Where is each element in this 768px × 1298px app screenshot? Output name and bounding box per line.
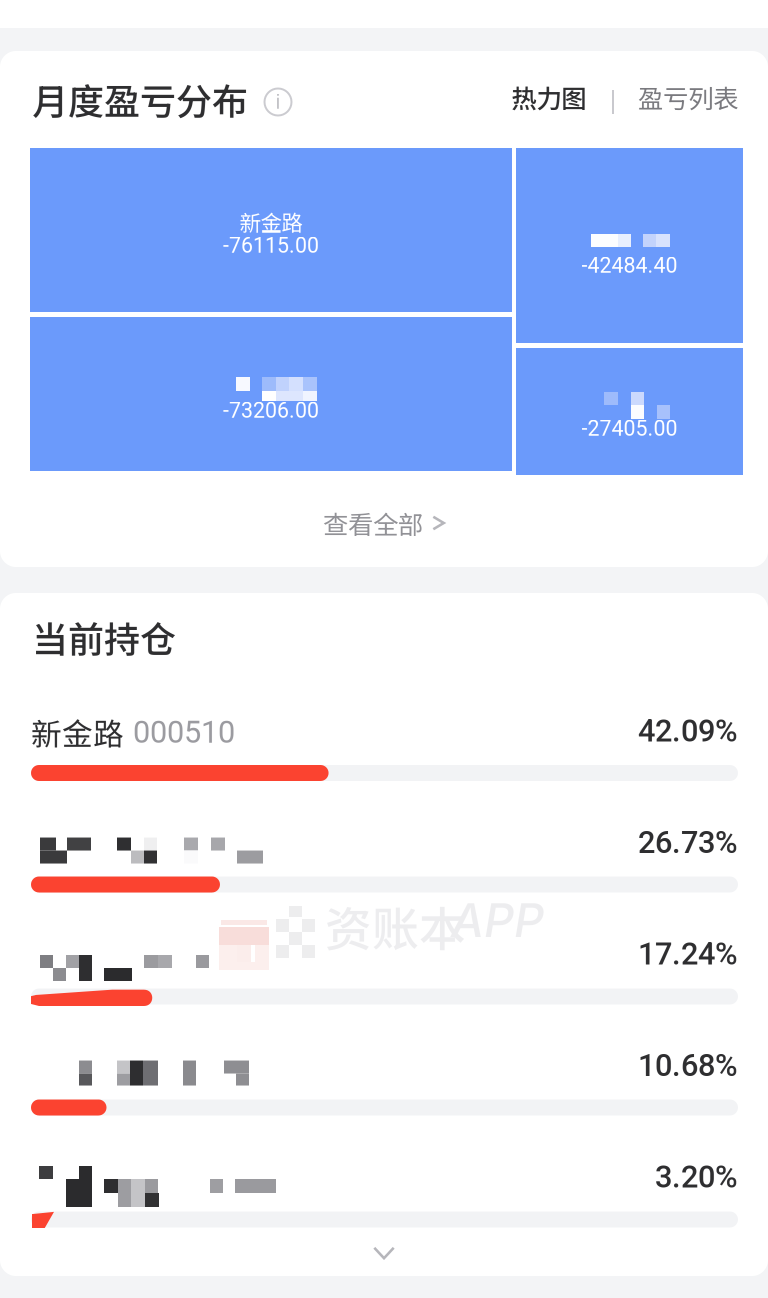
button[interactable]: 展开更多 (0, 1231, 768, 1275)
staticText: -76115.00 (223, 233, 319, 258)
staticText: 000510 (133, 714, 235, 750)
staticText: 新金路 (31, 710, 124, 754)
button[interactable]: 17.24% (0, 941, 768, 1041)
button[interactable]: 查看全部 (0, 495, 768, 551)
staticText: -27405.00 (581, 416, 677, 441)
staticText: i (275, 90, 280, 114)
button[interactable]: 10.68% (0, 1052, 768, 1152)
staticText: 查看全部 (323, 505, 423, 541)
staticText: 26.73% (638, 824, 738, 860)
button[interactable]: 3.20% (0, 1164, 768, 1264)
staticText: 热力图 (511, 79, 586, 115)
button[interactable]: 热力图 (499, 77, 599, 117)
staticText: 当前持仓 (32, 611, 176, 663)
staticText: 月度盈亏分布 (32, 73, 248, 125)
staticText: 3.20% (655, 1159, 738, 1195)
staticText: 17.24% (638, 936, 738, 972)
staticText: -42484.40 (581, 253, 677, 278)
staticText: -73206.00 (223, 398, 319, 423)
staticText: 资账本 (325, 892, 466, 960)
staticText: APP (451, 892, 544, 948)
button[interactable]: 新金路 (0, 718, 768, 818)
button[interactable]: 盈亏列表 (628, 77, 748, 117)
staticText: 10.68% (638, 1047, 738, 1083)
staticText: 42.09% (638, 713, 738, 749)
staticText: 盈亏列表 (638, 79, 738, 115)
button[interactable]: 26.73% (0, 829, 768, 929)
staticText: 新金路 (239, 206, 302, 237)
button[interactable]: 说明 (257, 81, 299, 123)
